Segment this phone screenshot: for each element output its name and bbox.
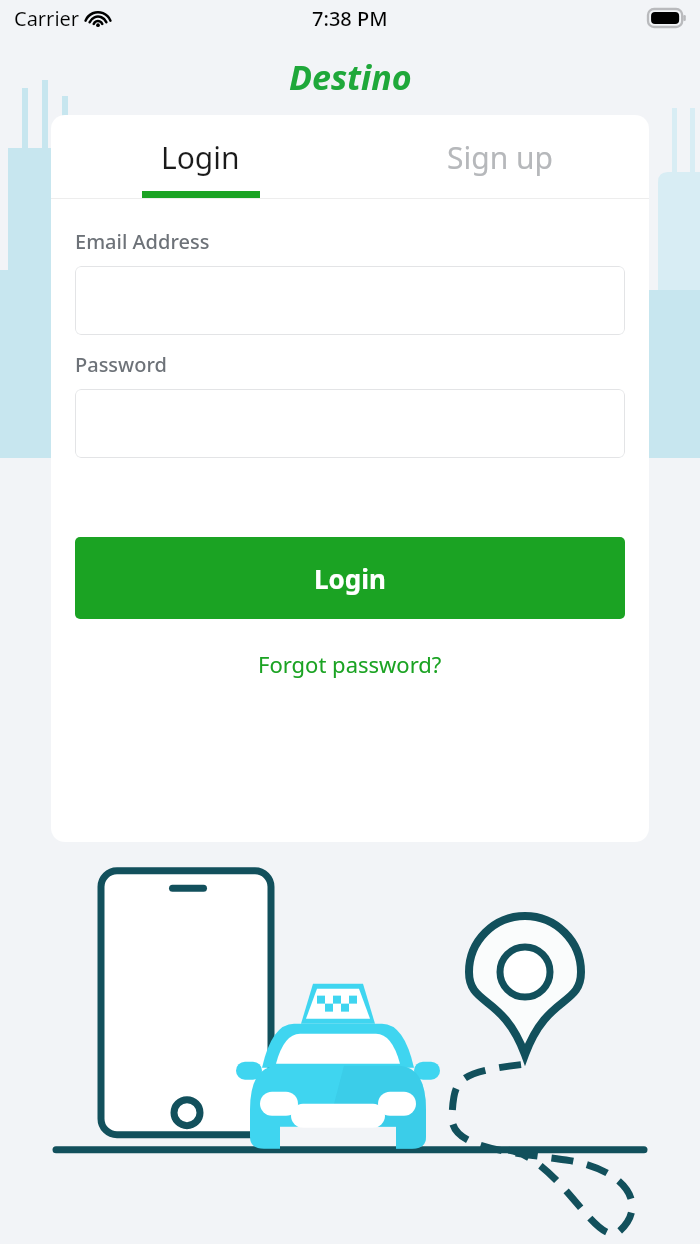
button[interactable]: Login: [75, 537, 625, 619]
staticText: Forgot password?: [258, 649, 442, 679]
button[interactable]: [75, 389, 625, 458]
button[interactable]: Forgot password?: [250, 645, 450, 683]
staticText: Sign up: [447, 137, 553, 178]
staticText: Carrier: [14, 5, 80, 32]
button[interactable]: [75, 266, 625, 335]
staticText: Password: [75, 351, 167, 378]
button[interactable]: Login: [51, 115, 350, 199]
button[interactable]: Sign up: [350, 115, 649, 199]
staticText: Login: [161, 137, 240, 178]
staticText: 7:38 PM: [312, 5, 388, 32]
staticText: Login: [314, 561, 386, 596]
staticText: Email Address: [75, 228, 210, 255]
staticText: Destino: [289, 54, 412, 100]
